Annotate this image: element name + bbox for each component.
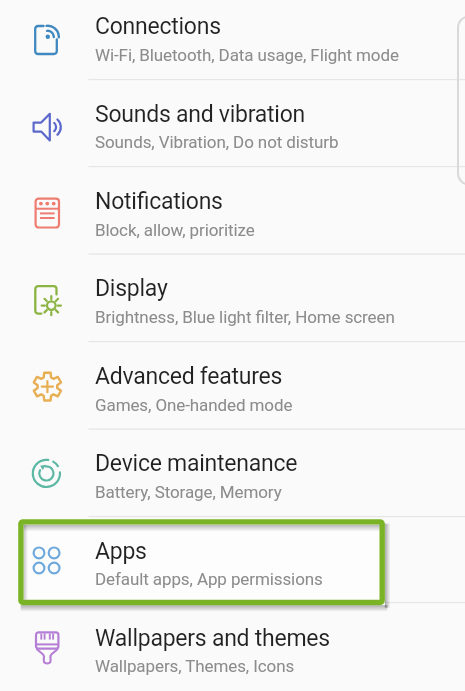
- button[interactable]: Display: [0, 254, 465, 342]
- staticText: Brightness, Blue light filter, Home scre…: [95, 307, 395, 327]
- staticText: Battery, Storage, Memory: [95, 482, 282, 502]
- button[interactable]: Connections: [0, 0, 465, 80]
- staticText: Sounds and vibration: [95, 101, 306, 128]
- staticText: Default apps, App permissions: [95, 569, 323, 589]
- button[interactable]: Notifications: [0, 167, 465, 255]
- button[interactable]: Apps: [0, 517, 465, 603]
- staticText: Wi-Fi, Bluetooth, Data usage, Flight mod…: [95, 45, 399, 65]
- staticText: Notifications: [95, 188, 223, 215]
- button[interactable]: Advanced features: [0, 342, 465, 430]
- staticText: Wallpapers, Themes, Icons: [95, 656, 295, 676]
- staticText: Games, One-handed mode: [95, 395, 293, 415]
- staticText: Wallpapers and themes: [95, 625, 330, 652]
- button[interactable]: Sounds and vibration: [0, 80, 465, 167]
- button[interactable]: Device maintenance: [0, 429, 465, 517]
- staticText: Connections: [95, 13, 221, 40]
- staticText: Apps: [95, 538, 147, 565]
- staticText: Advanced features: [95, 363, 283, 390]
- staticText: Display: [95, 275, 168, 302]
- staticText: Block, allow, prioritize: [95, 220, 255, 240]
- staticText: Sounds, Vibration, Do not disturb: [95, 132, 339, 152]
- staticText: Device maintenance: [95, 450, 298, 477]
- button[interactable]: Wallpapers and themes: [0, 603, 465, 691]
